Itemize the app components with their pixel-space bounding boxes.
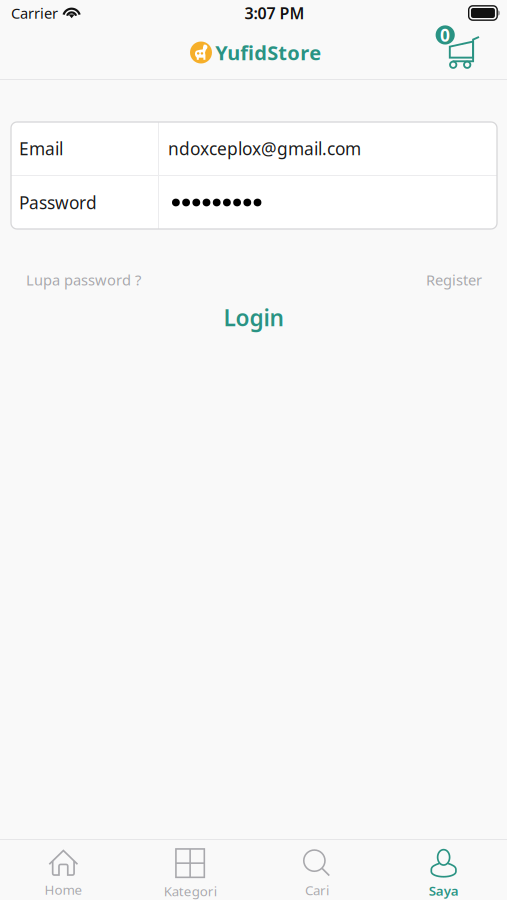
staticText: Cari <box>305 881 329 899</box>
staticText: Password <box>19 191 97 214</box>
button[interactable]: Register <box>426 266 482 293</box>
staticText: Carrier <box>11 3 58 23</box>
button[interactable]: Lupa password ? <box>26 266 141 293</box>
staticText: Login <box>223 302 283 333</box>
staticText: ndoxceplox@gmail.com <box>168 137 361 160</box>
staticText: Home <box>44 881 82 898</box>
button[interactable]: Kategori <box>127 840 254 900</box>
button[interactable]: Home <box>0 840 127 900</box>
staticText: Email <box>19 137 63 160</box>
button[interactable]: Shopping cart, 0 items <box>436 26 479 68</box>
button[interactable]: Saya <box>380 840 507 900</box>
staticText: Saya <box>429 882 459 899</box>
staticText: Lupa password ? <box>26 270 141 289</box>
button[interactable]: Cari <box>253 840 380 900</box>
staticText: 3:07 PM <box>244 2 304 24</box>
button[interactable]: Login <box>223 298 283 337</box>
staticText: Kategori <box>164 882 217 900</box>
staticText: YufidStore <box>215 39 321 66</box>
staticText: 0 <box>440 23 450 46</box>
staticText: Register <box>426 270 482 289</box>
